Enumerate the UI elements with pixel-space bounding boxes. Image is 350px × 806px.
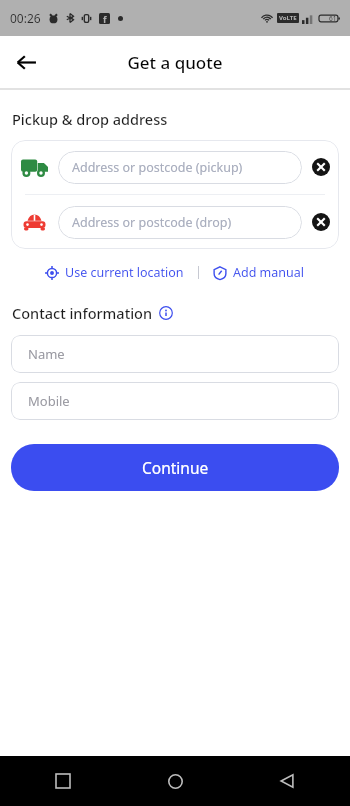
staticText: Continue — [142, 457, 209, 478]
button[interactable]: Home — [158, 764, 192, 798]
button[interactable]: Information — [159, 306, 173, 320]
button[interactable]: Address or postcode (pickup) — [11, 140, 339, 194]
staticText: Address or postcode (drop) — [72, 214, 232, 231]
button[interactable]: Add manual — [209, 260, 309, 285]
button[interactable]: Clear — [302, 140, 339, 194]
staticText: Name — [28, 345, 65, 363]
staticText: Pickup & drop address — [12, 109, 168, 129]
button[interactable]: Continue — [11, 444, 339, 491]
staticText: f — [103, 13, 107, 24]
button[interactable]: Mobile — [11, 382, 339, 420]
staticText: Use current location — [65, 264, 184, 281]
button[interactable]: Back — [270, 764, 304, 798]
button[interactable]: Address or postcode (drop) — [11, 195, 339, 249]
button[interactable]: Name — [11, 335, 339, 373]
button[interactable]: Recent apps — [46, 764, 80, 798]
staticText: 61 — [329, 14, 337, 23]
button[interactable]: Clear — [302, 195, 339, 249]
staticText: Add manual — [233, 264, 305, 281]
button[interactable]: Use current location — [41, 260, 188, 285]
staticText: Contact information — [12, 303, 153, 323]
staticText: 00:26 — [10, 10, 41, 26]
staticText: Get a quote — [127, 51, 223, 74]
button[interactable]: Back — [8, 44, 44, 80]
staticText: VoLTE — [279, 14, 297, 22]
staticText: Mobile — [28, 392, 70, 410]
staticText: Address or postcode (pickup) — [72, 159, 243, 176]
